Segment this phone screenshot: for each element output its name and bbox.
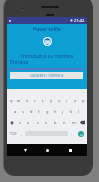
staticText: c <box>37 120 39 125</box>
button[interactable]: u <box>55 95 63 106</box>
staticText: 21:42 <box>74 18 85 23</box>
staticText: x <box>27 120 30 125</box>
button[interactable]: d <box>27 106 35 117</box>
staticText: n <box>63 120 66 125</box>
staticText: z <box>19 120 21 125</box>
staticText: t <box>42 98 44 103</box>
button[interactable]: j <box>59 106 67 117</box>
button[interactable]: e <box>23 95 31 106</box>
button[interactable]: y <box>47 95 55 106</box>
staticText: o <box>74 98 77 103</box>
button[interactable]: x <box>24 117 33 128</box>
staticText: ?123 <box>10 132 17 136</box>
button[interactable]: f <box>35 106 43 117</box>
staticText: Hacer selfie <box>33 26 61 33</box>
staticText: u <box>58 98 61 103</box>
button[interactable]: c <box>33 117 42 128</box>
button[interactable]: Shift <box>7 117 16 128</box>
staticText: w <box>17 98 21 103</box>
staticText: v <box>45 120 48 125</box>
button[interactable]: z <box>16 117 24 128</box>
button[interactable]: q <box>7 95 15 106</box>
staticText: Introduzca su nombre <box>21 53 74 60</box>
staticText: e <box>26 98 29 103</box>
staticText: r <box>34 98 36 103</box>
staticText: i <box>66 98 68 103</box>
button[interactable]: Enter <box>75 128 86 139</box>
button[interactable] <box>25 128 68 139</box>
button[interactable]: a <box>11 106 19 117</box>
button[interactable]: l <box>75 106 83 117</box>
staticText: p <box>82 98 85 103</box>
button[interactable]: Back <box>20 145 30 155</box>
button[interactable]: b <box>51 117 60 128</box>
staticText: Enrique <box>10 59 29 66</box>
button[interactable]: v <box>42 117 51 128</box>
button[interactable]: g <box>43 106 51 117</box>
staticText: SIGUIENTE / CONTINUE <box>30 74 64 78</box>
staticText: y <box>50 98 53 103</box>
button[interactable]: , <box>18 128 25 139</box>
button[interactable]: r <box>31 95 39 106</box>
button[interactable]: Backspace <box>78 117 87 128</box>
staticText: d <box>30 109 33 114</box>
staticText: f <box>38 109 40 114</box>
button[interactable]: i <box>63 95 71 106</box>
staticText: b <box>54 120 57 125</box>
button[interactable]: Home <box>42 145 52 155</box>
staticText: l <box>78 109 80 114</box>
button[interactable]: p <box>79 95 87 106</box>
button[interactable]: k <box>67 106 75 117</box>
button[interactable]: m <box>69 117 78 128</box>
button[interactable]: Recents <box>65 145 75 155</box>
button[interactable]: h <box>51 106 59 117</box>
button[interactable]: s <box>19 106 27 117</box>
button[interactable]: o <box>71 95 79 106</box>
staticText: q <box>10 98 13 103</box>
button[interactable]: w <box>15 95 23 106</box>
staticText: s <box>22 109 24 114</box>
button[interactable]: n <box>60 117 69 128</box>
staticText: g <box>46 109 49 114</box>
button[interactable]: SIGUIENTE / CONTINUE <box>10 72 83 79</box>
staticText: m <box>72 120 76 125</box>
staticText: j <box>62 109 64 114</box>
button[interactable]: ?123 <box>8 128 18 139</box>
staticText: , <box>21 131 23 136</box>
staticText: a <box>14 109 17 114</box>
staticText: k <box>70 109 73 114</box>
staticText: . <box>71 131 73 136</box>
button[interactable]: t <box>39 95 47 106</box>
staticText: h <box>54 109 57 114</box>
